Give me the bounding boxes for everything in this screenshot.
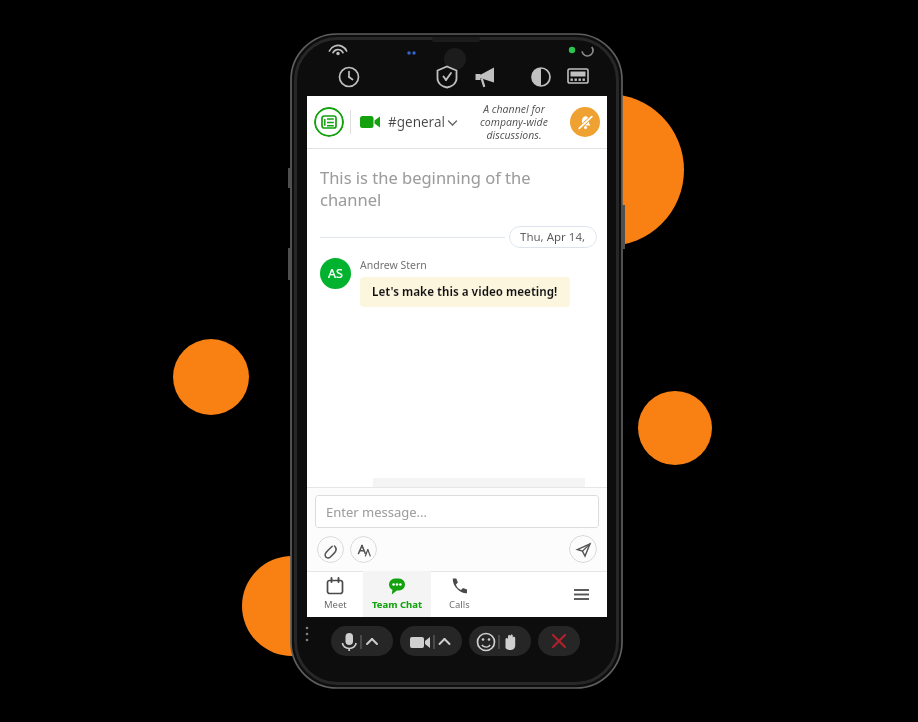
staticText: Calls (449, 598, 470, 611)
button[interactable]: Mute notifications (570, 107, 600, 137)
button[interactable]: More options (568, 581, 594, 607)
staticText: AS (328, 265, 343, 282)
button[interactable]: Channel info (314, 107, 344, 137)
staticText: Meet (324, 598, 347, 611)
button[interactable]: Attach file (317, 536, 344, 563)
button[interactable]: Send (569, 535, 597, 563)
button[interactable]: Microphone (331, 626, 393, 656)
staticText: Thu, Apr 14, (520, 229, 586, 245)
staticText: Let's make this a video meeting! (372, 284, 558, 300)
button[interactable]: #general (388, 113, 457, 131)
button[interactable]: Leave meeting (538, 626, 580, 656)
button[interactable]: Reactions (469, 626, 531, 656)
button[interactable]: Start video meeting (357, 109, 383, 135)
staticText: Enter message... (326, 503, 428, 521)
staticText: #general (388, 113, 445, 131)
button[interactable]: Enter message... (315, 495, 599, 528)
button[interactable]: Team Chat (363, 571, 431, 617)
button[interactable]: Calls (431, 571, 487, 617)
button[interactable]: Camera (400, 626, 462, 656)
staticText: Andrew Stern (360, 258, 427, 272)
staticText: Team Chat (372, 598, 422, 611)
button[interactable]: Meet (307, 571, 363, 617)
staticText: A channel for company-wide discussions. (462, 102, 566, 142)
button[interactable]: Let's make this a video meeting! (360, 277, 570, 307)
button[interactable]: Format text (350, 536, 377, 563)
staticText: This is the beginning of the channel (320, 166, 594, 210)
